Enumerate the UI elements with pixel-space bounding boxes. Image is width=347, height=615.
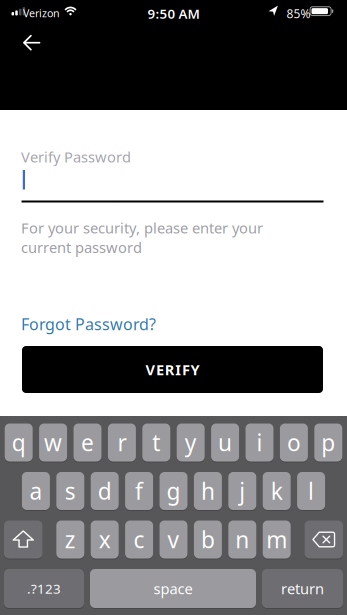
staticText: m bbox=[266, 524, 287, 554]
staticText: a bbox=[29, 476, 42, 506]
staticText: c bbox=[134, 524, 145, 554]
staticText: l bbox=[308, 476, 314, 506]
staticText: space bbox=[153, 579, 192, 598]
staticText: q bbox=[12, 427, 26, 457]
staticText: Verizon bbox=[23, 6, 60, 20]
button[interactable]: s bbox=[56, 472, 84, 510]
staticText: e bbox=[81, 427, 94, 457]
staticText: n bbox=[235, 524, 249, 554]
staticText: i bbox=[256, 427, 262, 457]
button[interactable]: v bbox=[159, 520, 187, 558]
button[interactable]: Delete bbox=[304, 520, 343, 558]
button[interactable]: p bbox=[314, 423, 342, 461]
staticText: o bbox=[287, 427, 301, 457]
staticText: VERIFY bbox=[145, 360, 199, 379]
button[interactable]: Shift bbox=[4, 520, 42, 558]
staticText: y bbox=[185, 427, 197, 457]
staticText: current password bbox=[21, 237, 142, 257]
staticText: For your security, please enter your bbox=[21, 218, 263, 237]
staticText: v bbox=[167, 524, 179, 554]
staticText: s bbox=[65, 476, 76, 506]
button[interactable]: k bbox=[263, 472, 291, 510]
button[interactable]: m bbox=[263, 520, 291, 558]
button[interactable]: x bbox=[91, 520, 119, 558]
staticText: return bbox=[281, 579, 324, 598]
button[interactable]: e bbox=[73, 423, 101, 461]
staticText: Forgot Password? bbox=[21, 313, 156, 335]
button[interactable]: space bbox=[90, 569, 256, 608]
staticText: b bbox=[201, 524, 215, 554]
staticText: h bbox=[201, 476, 215, 506]
button[interactable]: Back bbox=[11, 27, 51, 59]
button[interactable]: return bbox=[262, 569, 343, 608]
button[interactable]: i bbox=[245, 423, 273, 461]
button[interactable]: w bbox=[39, 423, 67, 461]
staticText: d bbox=[98, 476, 112, 506]
staticText: 85% bbox=[286, 6, 310, 21]
staticText: u bbox=[218, 427, 232, 457]
staticText: x bbox=[99, 524, 111, 554]
button[interactable]: n bbox=[228, 520, 256, 558]
button[interactable]: q bbox=[5, 423, 33, 461]
button[interactable]: .?123 bbox=[4, 569, 84, 608]
staticText: 9:50 AM bbox=[147, 5, 199, 22]
button[interactable]: o bbox=[280, 423, 308, 461]
staticText: w bbox=[44, 427, 62, 457]
button[interactable]: VERIFY bbox=[22, 346, 323, 393]
staticText: p bbox=[321, 427, 335, 457]
button[interactable]: z bbox=[56, 520, 84, 558]
button[interactable]: r bbox=[108, 423, 136, 461]
staticText: j bbox=[239, 476, 245, 506]
staticText: k bbox=[271, 476, 283, 506]
staticText: Verify Password bbox=[21, 147, 131, 166]
button[interactable]: a bbox=[22, 472, 50, 510]
button[interactable]: l bbox=[297, 472, 325, 510]
button[interactable]: c bbox=[125, 520, 153, 558]
button[interactable]: h bbox=[194, 472, 222, 510]
staticText: z bbox=[65, 524, 76, 554]
button[interactable]: g bbox=[159, 472, 187, 510]
button[interactable]: u bbox=[211, 423, 239, 461]
staticText: .?123 bbox=[27, 580, 61, 597]
button[interactable]: y bbox=[177, 423, 205, 461]
staticText: f bbox=[135, 476, 143, 506]
button[interactable]: b bbox=[194, 520, 222, 558]
button[interactable]: d bbox=[91, 472, 119, 510]
staticText: t bbox=[152, 427, 160, 457]
staticText: r bbox=[117, 427, 126, 457]
button[interactable]: t bbox=[142, 423, 170, 461]
staticText: g bbox=[166, 476, 180, 506]
button[interactable]: j bbox=[228, 472, 256, 510]
button[interactable]: Forgot Password? bbox=[21, 313, 156, 335]
button[interactable]: f bbox=[125, 472, 153, 510]
